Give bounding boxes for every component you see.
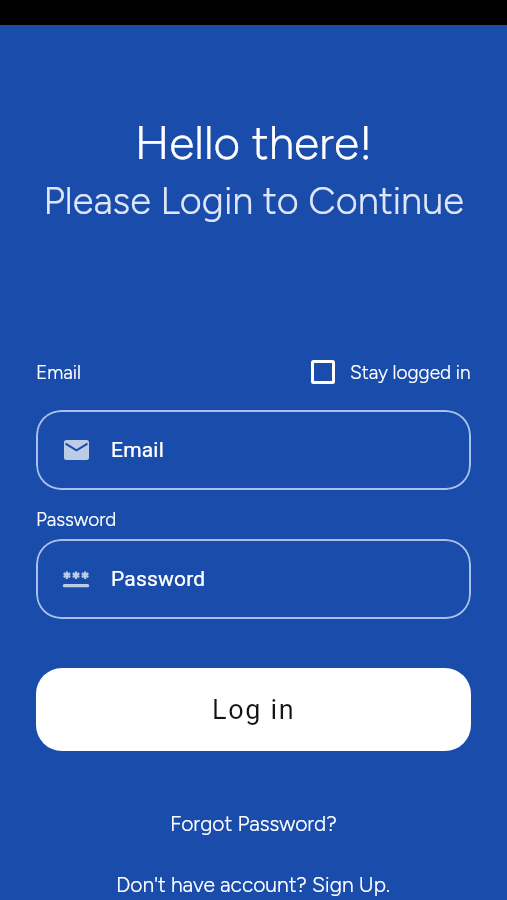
button[interactable]: Log in: [36, 668, 471, 751]
staticText: Email: [111, 438, 164, 463]
other: Email: [64, 440, 89, 460]
other: Password: [62, 571, 90, 588]
staticText: Hello there!: [0, 115, 507, 170]
staticText: Password: [36, 508, 117, 531]
staticText: Don't have account? Sign Up.: [116, 872, 391, 897]
staticText: Stay logged in: [350, 361, 471, 384]
button[interactable]: Password: [36, 539, 471, 619]
staticText: Forgot Password?: [170, 811, 337, 836]
staticText: Password: [111, 567, 206, 592]
staticText: Please Login to Continue: [0, 178, 507, 224]
button[interactable]: Don't have account? Sign Up.: [0, 868, 507, 900]
button[interactable]: Forgot Password?: [0, 808, 507, 838]
button[interactable]: Stay logged in: [311, 360, 471, 384]
staticText: Log in: [212, 694, 296, 726]
button[interactable]: Email: [36, 410, 471, 490]
staticText: Email: [36, 361, 81, 384]
